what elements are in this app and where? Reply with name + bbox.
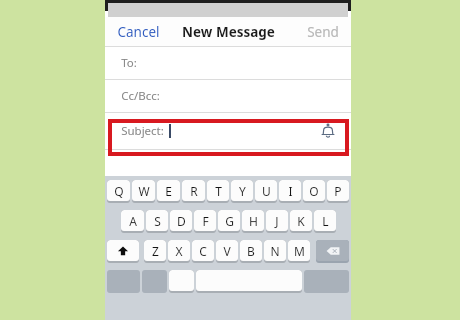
staticText: H <box>249 213 258 229</box>
staticText: O <box>309 183 319 199</box>
button[interactable]: C <box>192 240 214 263</box>
staticText: X <box>175 243 183 259</box>
button[interactable]: Notify me <box>317 120 339 142</box>
staticText: T <box>215 183 222 199</box>
button[interactable]: P <box>327 180 349 203</box>
staticText: Cancel <box>117 23 160 41</box>
button[interactable]: To: <box>105 47 351 79</box>
button[interactable]: J <box>266 210 288 233</box>
button[interactable]: U <box>255 180 277 203</box>
button[interactable]: F <box>194 210 216 233</box>
staticText: V <box>223 243 231 259</box>
button[interactable]: H <box>242 210 264 233</box>
button[interactable]: G <box>218 210 240 233</box>
staticText: Subject: <box>121 123 164 139</box>
button[interactable]: Y <box>231 180 253 203</box>
button[interactable]: N <box>264 240 286 263</box>
button[interactable]: Q <box>107 180 130 203</box>
button[interactable]: K <box>290 210 312 233</box>
staticText: Z <box>152 243 159 259</box>
button[interactable]: Z <box>144 240 166 263</box>
staticText: G <box>225 213 234 229</box>
staticText: Cc/Bcc: <box>121 88 160 104</box>
staticText: K <box>297 213 305 229</box>
button[interactable]: Shift <box>107 240 139 263</box>
staticText: B <box>247 243 255 259</box>
staticText: To: <box>121 55 137 71</box>
staticText: Send <box>307 23 339 41</box>
button[interactable]: T <box>207 180 229 203</box>
button[interactable]: I <box>279 180 301 203</box>
staticText: L <box>322 213 329 229</box>
button[interactable]: O <box>303 180 325 203</box>
button[interactable]: Send <box>301 19 345 45</box>
staticText: R <box>190 183 198 199</box>
button[interactable]: D <box>170 210 192 233</box>
button[interactable]: R <box>182 180 205 203</box>
button[interactable] <box>169 270 194 293</box>
staticText: M <box>294 243 305 259</box>
staticText: U <box>262 183 271 199</box>
button[interactable]: E <box>157 180 180 203</box>
staticText: A <box>129 213 137 229</box>
staticText: I <box>288 183 293 199</box>
staticText: Q <box>114 183 124 199</box>
staticText: Y <box>239 183 246 199</box>
staticText: P <box>334 183 342 199</box>
button[interactable]: Cancel <box>111 19 166 45</box>
staticText: J <box>275 213 279 229</box>
staticText: W <box>138 183 150 199</box>
button[interactable]: A <box>121 210 144 233</box>
staticText: New Message <box>182 23 275 41</box>
staticText: S <box>154 213 161 229</box>
button[interactable]: L <box>314 210 336 233</box>
staticText: F <box>202 213 209 229</box>
button[interactable]: Subject: <box>105 113 351 149</box>
button[interactable]: V <box>216 240 238 263</box>
button[interactable]: W <box>132 180 155 203</box>
button[interactable]: X <box>168 240 190 263</box>
button[interactable]: M <box>288 240 310 263</box>
button[interactable]: S <box>146 210 168 233</box>
button[interactable]: Delete <box>316 240 349 263</box>
staticText: D <box>177 213 186 229</box>
button[interactable]: Cc/Bcc: <box>105 80 351 112</box>
staticText: E <box>165 183 172 199</box>
staticText: C <box>199 243 207 259</box>
button[interactable]: B <box>240 240 262 263</box>
staticText: N <box>270 243 280 259</box>
button[interactable] <box>196 270 302 293</box>
